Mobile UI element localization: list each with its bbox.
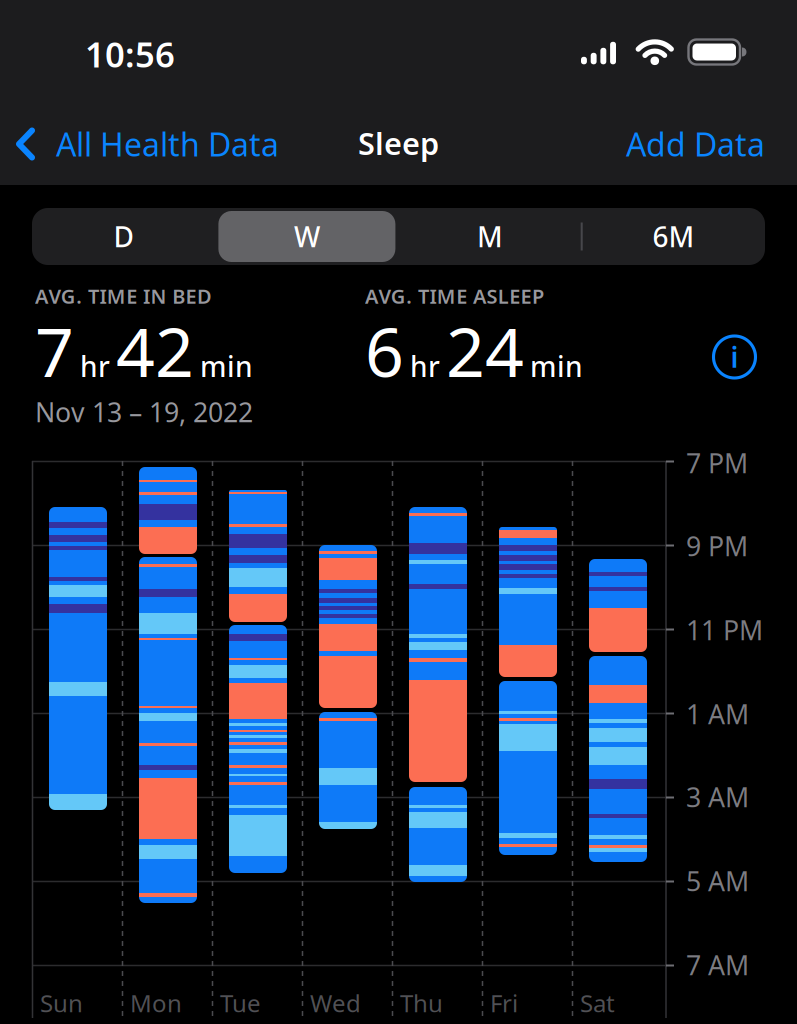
staticText: Sat xyxy=(580,987,615,1019)
staticText: 6M xyxy=(652,218,694,255)
staticText: Wed xyxy=(310,987,361,1019)
staticText: 11 PM xyxy=(686,612,763,648)
staticText: Thu xyxy=(400,987,443,1019)
staticText: Tue xyxy=(220,987,261,1019)
staticText: D xyxy=(114,218,134,255)
staticText: min xyxy=(200,347,253,385)
button[interactable]: All Health Data xyxy=(15,123,279,165)
staticText: 5 AM xyxy=(686,863,749,899)
staticText: Nov 13 – 19, 2022 xyxy=(35,394,253,430)
button[interactable]: About Sleep xyxy=(712,334,757,379)
staticText: W xyxy=(294,218,320,255)
staticText: Mon xyxy=(130,987,182,1019)
staticText: Sleep xyxy=(358,123,439,163)
staticText: 6 xyxy=(365,305,404,396)
staticText: 7 PM xyxy=(686,445,748,481)
button[interactable]: 6M xyxy=(583,208,764,265)
staticText: Add Data xyxy=(626,123,765,165)
staticText: 1 AM xyxy=(686,696,749,732)
button[interactable]: W xyxy=(216,208,397,265)
staticText: AVG. TIME ASLEEP xyxy=(365,283,544,309)
button[interactable]: D xyxy=(33,208,214,265)
staticText: 10:56 xyxy=(85,31,175,77)
staticText: 3 AM xyxy=(686,779,749,815)
staticText: AVG. TIME IN BED xyxy=(35,283,212,309)
staticText: Sun xyxy=(40,987,83,1019)
button[interactable]: Add Data xyxy=(626,123,765,165)
staticText: 7 AM xyxy=(686,947,749,983)
staticText: min xyxy=(530,347,583,385)
staticText: i xyxy=(730,338,738,376)
button[interactable]: M xyxy=(400,208,581,265)
staticText: 9 PM xyxy=(686,528,748,564)
staticText: All Health Data xyxy=(56,123,279,165)
staticText: hr xyxy=(410,347,440,385)
staticText: M xyxy=(477,218,503,255)
staticText: hr xyxy=(80,347,110,385)
staticText: Fri xyxy=(490,987,518,1019)
staticText: 7 xyxy=(35,305,74,396)
staticText: 24 xyxy=(446,305,524,396)
staticText: 42 xyxy=(116,305,194,396)
